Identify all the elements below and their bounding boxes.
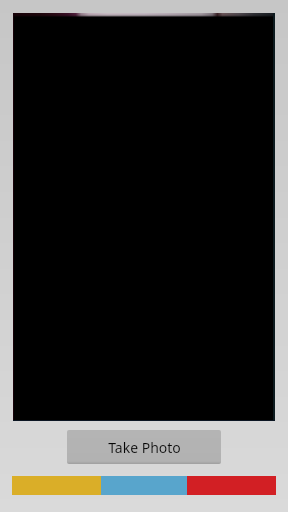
button[interactable]: Take Photo bbox=[67, 430, 221, 464]
button[interactable]: Camera preview bbox=[13, 13, 275, 421]
staticText: Take Photo bbox=[108, 438, 181, 457]
